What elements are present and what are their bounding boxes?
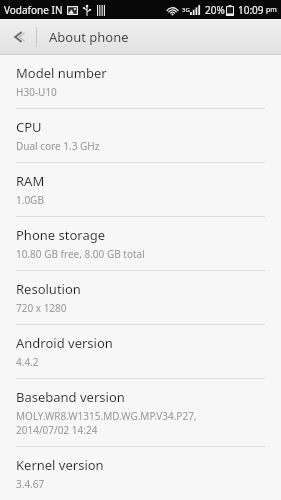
button[interactable]: Back	[0, 19, 36, 54]
staticText: H30-U10	[16, 85, 57, 99]
staticText: RAM	[16, 172, 45, 190]
staticText: Android version	[16, 334, 113, 352]
staticText: 3.4.67	[16, 477, 45, 491]
button[interactable]: Model number	[0, 55, 281, 109]
staticText: About phone	[49, 28, 129, 46]
button[interactable]: Kernel version	[0, 447, 281, 500]
staticText: 10:09	[238, 3, 264, 17]
staticText: Resolution	[16, 280, 81, 298]
staticText: 20%	[205, 3, 225, 17]
staticText: 3G	[182, 6, 190, 14]
staticText: MOLY.WR8.W1315.MD.WG.MP.V34.P27,	[16, 409, 197, 423]
staticText: Phone storage	[16, 226, 106, 244]
staticText: 10.80 GB free, 8.00 GB total	[16, 247, 145, 261]
button[interactable]: Android version	[0, 325, 281, 379]
staticText: Kernel version	[16, 456, 104, 474]
staticText: Dual core 1.3 GHz	[16, 139, 100, 153]
staticText: 2014/07/02 14:24	[16, 423, 98, 437]
staticText: pm	[266, 5, 277, 15]
staticText: Vodafone IN	[4, 3, 63, 17]
button[interactable]: Baseband version	[0, 379, 281, 447]
button[interactable]: RAM	[0, 163, 281, 217]
staticText: CPU	[16, 118, 42, 136]
staticText: 720 x 1280	[16, 301, 67, 315]
staticText: 4.4.2	[16, 355, 39, 369]
staticText: Model number	[16, 64, 107, 82]
button[interactable]: CPU	[0, 109, 281, 163]
button[interactable]: Resolution	[0, 271, 281, 325]
staticText: 1.0GB	[16, 193, 44, 207]
button[interactable]: Phone storage	[0, 217, 281, 271]
staticText: Baseband version	[16, 388, 125, 406]
